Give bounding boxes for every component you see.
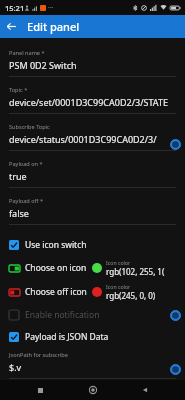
button[interactable]: Subscribe Topic — [0, 120, 185, 157]
staticText: Payload off * — [9, 197, 44, 205]
staticText: Icon color — [106, 283, 131, 290]
button[interactable]: Help — [168, 362, 182, 376]
staticText: $.v — [9, 361, 22, 373]
button[interactable]: Help — [168, 308, 182, 322]
staticText: Payload is JSON Data — [25, 331, 109, 343]
staticText: PSM 0D2 Switch — [9, 59, 77, 71]
button[interactable]: JsonPath for subscribe — [0, 348, 185, 380]
staticText: Topic * — [9, 86, 28, 94]
button[interactable]: Use icon switch — [0, 234, 185, 256]
staticText: Panel name * — [9, 49, 45, 57]
button[interactable]: Help — [168, 137, 182, 151]
button[interactable]: Back — [133, 380, 157, 400]
staticText: Icon color — [106, 259, 131, 266]
button[interactable]: Enable notification — [0, 304, 185, 326]
button[interactable]: Panel name * — [0, 46, 185, 83]
staticText: JsonPath for subscribe — [9, 351, 68, 359]
button[interactable]: Icon color — [92, 283, 156, 301]
staticText: true — [9, 170, 27, 182]
staticText: device/set/0001D3C99CA0D2/3/STATE — [9, 96, 168, 108]
button[interactable]: Topic * — [0, 83, 185, 120]
button[interactable]: Payload is JSON Data — [0, 326, 185, 348]
button[interactable]: Back — [0, 15, 23, 38]
button[interactable]: Icon color — [92, 259, 165, 277]
staticText: Payload on * — [9, 160, 43, 168]
staticText: Use icon switch — [25, 239, 87, 251]
staticText: device/status/0001D3C99CA0D2/3/STATE — [9, 133, 176, 145]
staticText: 15:21 — [5, 3, 25, 13]
staticText: Choose off icon — [25, 286, 87, 298]
staticText: false — [9, 207, 29, 219]
button[interactable]: Payload off * — [0, 194, 185, 231]
button[interactable]: Home — [81, 380, 105, 400]
staticText: Edit panel — [27, 19, 80, 34]
staticText: Choose on icon — [25, 262, 87, 274]
button[interactable]: Recents — [28, 380, 52, 400]
staticText: Subscribe Topic — [9, 123, 50, 131]
button[interactable]: Choose on icon — [9, 262, 87, 274]
staticText: ··· — [48, 3, 54, 13]
button[interactable]: Choose off icon — [9, 286, 87, 298]
button[interactable]: Payload on * — [0, 157, 185, 194]
staticText: rgb(102, 255, 1( — [106, 266, 165, 277]
staticText: rgb(245, 0, 0) — [106, 290, 156, 301]
staticText: Enable notification — [25, 309, 100, 321]
